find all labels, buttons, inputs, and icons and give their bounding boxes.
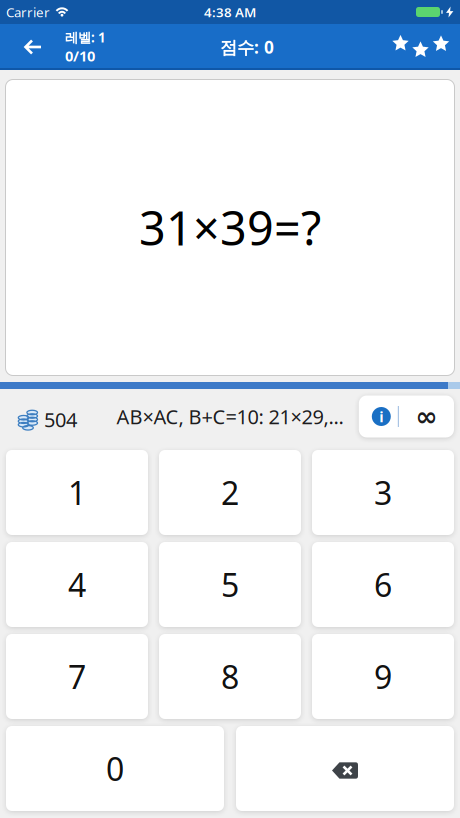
staticText: ∞ [415,401,437,432]
staticText: 3 [374,471,392,514]
button[interactable]: 5 [159,542,301,627]
staticText: 레벨: 1 [65,28,106,46]
staticText: i [379,407,383,426]
staticText: 8 [221,655,239,698]
button[interactable]: 8 [159,634,301,719]
button[interactable]: 9 [312,634,454,719]
staticText: Carrier [6,3,50,21]
staticText: 4 [68,563,86,606]
staticText: 5 [221,563,239,606]
button[interactable]: Unlimited [399,395,454,437]
button[interactable]: Info [359,395,398,437]
staticText: 0/10 [65,46,95,66]
staticText: 31×39=? [139,196,321,258]
staticText: 504 [44,406,77,433]
button[interactable]: 7 [6,634,148,719]
button[interactable]: 1 [6,450,148,535]
staticText: 9 [374,655,392,698]
button[interactable]: 2 [159,450,301,535]
button[interactable]: 3 [312,450,454,535]
button[interactable]: Stars [390,31,460,63]
button[interactable]: 6 [312,542,454,627]
staticText: AB×AC, B+C=10: 21×29,... [116,403,343,430]
staticText: 7 [68,655,86,698]
staticText: 6 [374,563,392,606]
button[interactable]: Delete [236,726,454,811]
staticText: 0 [106,747,124,790]
staticText: 2 [221,471,239,514]
button[interactable]: Coins [0,406,77,433]
button[interactable]: Back [0,39,52,54]
staticText: 점수: 0 [220,35,274,58]
staticText: 4:38 AM [204,3,256,21]
button[interactable]: 4 [6,542,148,627]
button[interactable]: 0 [6,726,224,811]
staticText: 1 [68,471,86,514]
